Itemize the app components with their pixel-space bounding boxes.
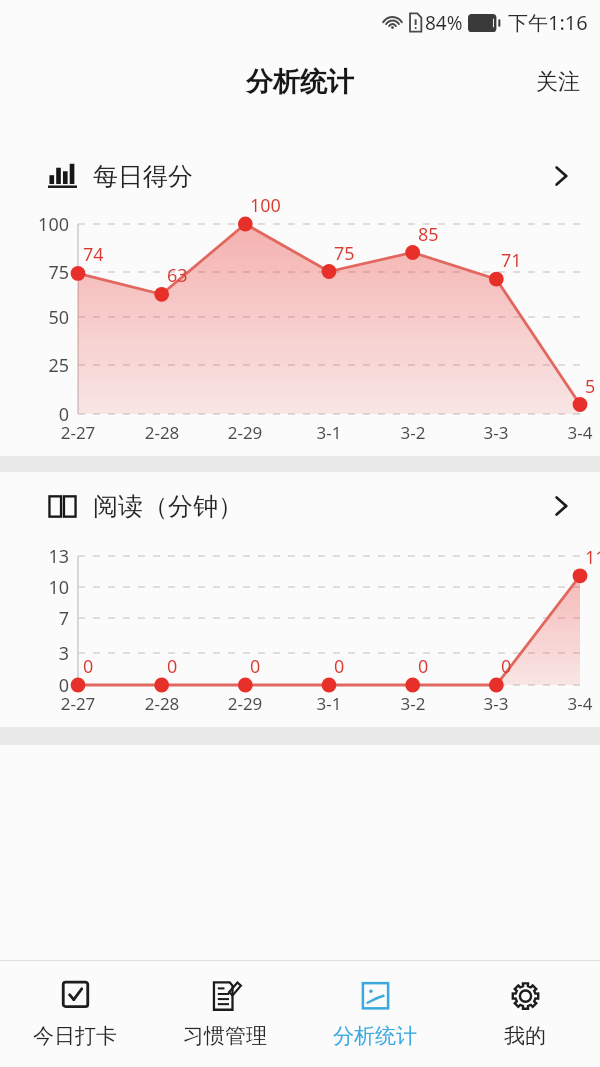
staticText: 2-29 (218, 421, 272, 444)
staticText: 84% (425, 10, 463, 36)
staticText: 63 (167, 263, 188, 288)
staticText: 7 (0, 606, 69, 631)
staticText: 我的 (504, 1023, 546, 1049)
staticText: 0 (418, 654, 429, 679)
staticText: 0 (334, 654, 345, 679)
staticText: 75 (0, 260, 69, 285)
staticText: 3-1 (302, 692, 356, 715)
staticText: 3-4 (553, 692, 600, 715)
staticText: 75 (334, 241, 355, 266)
staticText: 3-2 (386, 421, 440, 444)
staticText: 85 (418, 222, 439, 247)
button[interactable]: 关注 (526, 60, 590, 104)
staticText: 74 (83, 242, 104, 267)
staticText: 0 (501, 654, 512, 679)
button[interactable]: 习惯管理 (150, 961, 300, 1067)
staticText: 11 (585, 545, 600, 570)
staticText: 关注 (536, 68, 580, 96)
staticText: 2-28 (135, 692, 189, 715)
staticText: 阅读（分钟） (93, 491, 243, 522)
other: 习惯管理 (208, 980, 243, 1015)
other: 今日打卡 (58, 980, 93, 1015)
other: 我的 (508, 980, 543, 1015)
staticText: 0 (250, 654, 261, 679)
staticText: 0 (83, 654, 94, 679)
staticText: 2-27 (51, 692, 105, 715)
staticText: 100 (250, 193, 281, 218)
staticText: 25 (0, 353, 69, 378)
staticText: 0 (167, 654, 178, 679)
staticText: 5 (585, 374, 596, 399)
other: 查看阅读（分钟） (548, 493, 574, 519)
button[interactable]: 我的 (450, 961, 600, 1067)
button[interactable]: 阅读（分钟） (0, 472, 600, 540)
other: 分析统计 (358, 980, 393, 1015)
staticText: 习惯管理 (183, 1023, 267, 1049)
staticText: 分析统计 (333, 1023, 417, 1049)
staticText: 3 (0, 641, 69, 666)
staticText: 50 (0, 305, 69, 330)
staticText: 71 (501, 248, 522, 273)
staticText: 2-29 (218, 692, 272, 715)
staticText: 0 (0, 673, 69, 698)
staticText: 下午1:16 (508, 9, 588, 36)
button[interactable]: 分析统计 (300, 961, 450, 1067)
staticText: 3-2 (386, 692, 440, 715)
staticText: 0 (0, 402, 69, 427)
staticText: 10 (0, 575, 69, 600)
staticText: 3-3 (469, 692, 523, 715)
staticText: 3-3 (469, 421, 523, 444)
staticText: 2-28 (135, 421, 189, 444)
staticText: 13 (0, 544, 69, 569)
staticText: 100 (0, 212, 69, 237)
staticText: 分析统计 (246, 65, 354, 99)
other: 查看每日得分 (548, 163, 574, 189)
staticText: 3-4 (553, 421, 600, 444)
staticText: 今日打卡 (33, 1023, 117, 1049)
staticText: 3-1 (302, 421, 356, 444)
button[interactable]: 今日打卡 (0, 961, 150, 1067)
staticText: 每日得分 (93, 161, 193, 192)
button[interactable]: 每日得分 (0, 142, 600, 210)
staticText: 2-27 (51, 421, 105, 444)
